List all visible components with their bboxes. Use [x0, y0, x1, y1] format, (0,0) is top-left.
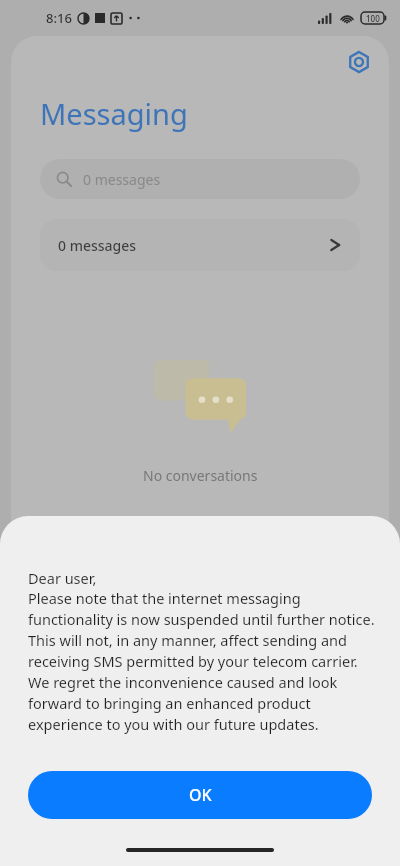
- button[interactable]: 0 messages: [40, 219, 360, 271]
- button[interactable]: Settings: [339, 42, 379, 82]
- staticText: 0 messages: [58, 236, 137, 255]
- button[interactable]: OK: [28, 771, 372, 819]
- staticText: Messaging: [40, 94, 188, 133]
- staticText: 100: [366, 13, 380, 24]
- staticText: 8:16: [46, 9, 72, 27]
- staticText: No conversations: [143, 466, 258, 485]
- staticText: Dear user, Please note that the internet…: [28, 568, 380, 735]
- staticText: OK: [189, 784, 212, 806]
- staticText: 0 messages: [83, 170, 161, 189]
- button[interactable]: 0 messages: [40, 159, 360, 199]
